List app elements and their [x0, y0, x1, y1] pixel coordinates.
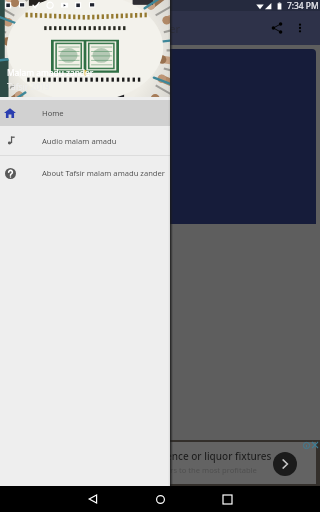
button[interactable]: Recent apps	[214, 486, 240, 512]
staticText: ers to the most profitable	[166, 465, 257, 475]
button[interactable]: Ad information	[302, 441, 310, 449]
button[interactable]: About Tafsir malam amadu zander	[0, 156, 170, 190]
staticText: About Tafsir malam amadu zander	[42, 168, 165, 178]
staticText: Tafsir malam amadu zander	[36, 21, 181, 36]
staticText: Home	[42, 108, 64, 118]
staticText: 7:34 PM	[287, 0, 319, 11]
staticText: Tafsir 2019	[7, 81, 50, 92]
staticText: Malam amadu zander	[7, 67, 94, 78]
button[interactable]: Open advertisement	[273, 452, 297, 476]
staticText: ence or liquor fixtures	[166, 449, 272, 463]
staticText: Audio malam amadu	[42, 136, 117, 146]
button[interactable]: Audio malam amadu	[0, 126, 170, 155]
button[interactable]: Share	[265, 16, 289, 40]
button[interactable]: More options	[289, 17, 311, 39]
button[interactable]: Home	[0, 100, 170, 126]
button[interactable]: Close ad	[310, 440, 319, 449]
button[interactable]: Back	[80, 486, 106, 512]
button[interactable]: Home	[147, 486, 173, 512]
